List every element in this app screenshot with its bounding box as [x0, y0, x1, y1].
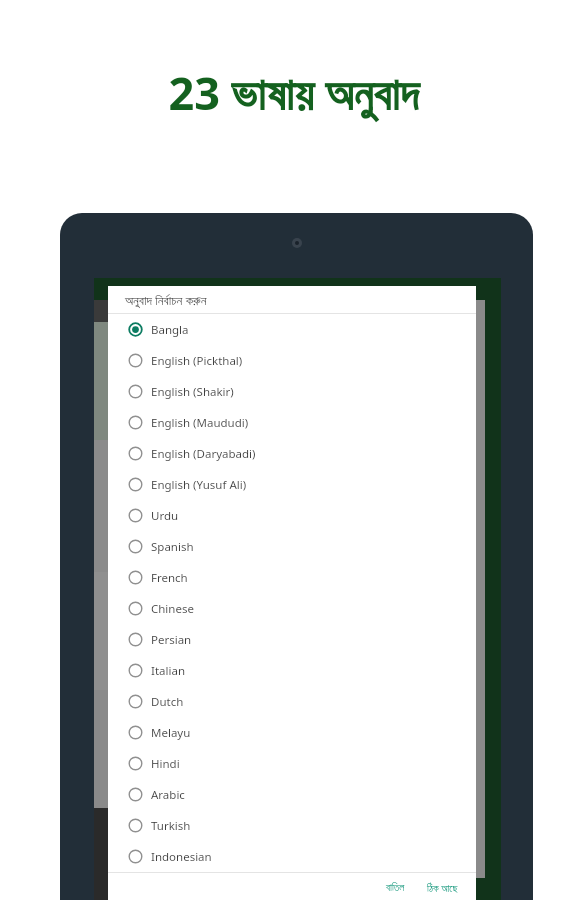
- button[interactable]: Bangla: [108, 314, 476, 345]
- button[interactable]: Persian: [108, 624, 476, 655]
- other: English (Maududi): [128, 415, 143, 430]
- button[interactable]: Arabic: [108, 779, 476, 810]
- staticText: অনুবাদ নির্বাচন করুন: [125, 291, 207, 309]
- other: English (Shakir): [128, 384, 143, 399]
- staticText: English (Yusuf Ali): [151, 477, 247, 493]
- other: Dutch: [128, 694, 143, 709]
- button[interactable]: বাতিল: [380, 879, 411, 897]
- button[interactable]: Turkish: [108, 810, 476, 841]
- other: Hindi: [128, 756, 143, 771]
- other: Bangla: [128, 322, 143, 337]
- staticText: Indonesian: [151, 849, 212, 865]
- staticText: English (Daryabadi): [151, 446, 256, 462]
- staticText: French: [151, 570, 188, 586]
- staticText: Melayu: [151, 725, 191, 741]
- button[interactable]: Hindi: [108, 748, 476, 779]
- button[interactable]: ঠিক আছে: [421, 877, 464, 899]
- staticText: Italian: [151, 663, 185, 679]
- other: Chinese: [128, 601, 143, 616]
- other: Italian: [128, 663, 143, 678]
- other: Persian: [128, 632, 143, 647]
- other: English (Yusuf Ali): [128, 477, 143, 492]
- staticText: Dutch: [151, 694, 184, 710]
- other: Melayu: [128, 725, 143, 740]
- other: Urdu: [128, 508, 143, 523]
- staticText: Persian: [151, 632, 192, 648]
- button[interactable]: Urdu: [108, 500, 476, 531]
- button[interactable]: English (Shakir): [108, 376, 476, 407]
- button[interactable]: English (Yusuf Ali): [108, 469, 476, 500]
- other: Arabic: [128, 787, 143, 802]
- button[interactable]: Italian: [108, 655, 476, 686]
- button[interactable]: English (Daryabadi): [108, 438, 476, 469]
- button[interactable]: English (Pickthal): [108, 345, 476, 376]
- staticText: Urdu: [151, 508, 179, 524]
- other: French: [128, 570, 143, 585]
- other: English (Pickthal): [128, 353, 143, 368]
- staticText: Bangla: [151, 322, 189, 338]
- staticText: English (Pickthal): [151, 353, 243, 369]
- other: English (Daryabadi): [128, 446, 143, 461]
- button[interactable]: Chinese: [108, 593, 476, 624]
- staticText: Arabic: [151, 787, 185, 803]
- staticText: Spanish: [151, 539, 194, 555]
- staticText: Hindi: [151, 756, 180, 772]
- other: Turkish: [128, 818, 143, 833]
- staticText: Chinese: [151, 601, 194, 617]
- staticText: English (Shakir): [151, 384, 234, 400]
- staticText: ঠিক আছে: [427, 881, 458, 895]
- other: Spanish: [128, 539, 143, 554]
- button[interactable]: Indonesian: [108, 841, 476, 872]
- staticText: English (Maududi): [151, 415, 249, 431]
- staticText: বাতিল: [386, 883, 405, 893]
- button[interactable]: French: [108, 562, 476, 593]
- button[interactable]: Dutch: [108, 686, 476, 717]
- staticText: 23 ভাষায় অনুবাদ: [168, 62, 419, 123]
- button[interactable]: Melayu: [108, 717, 476, 748]
- button[interactable]: English (Maududi): [108, 407, 476, 438]
- staticText: Turkish: [151, 818, 191, 834]
- button[interactable]: Spanish: [108, 531, 476, 562]
- other: Indonesian: [128, 849, 143, 864]
